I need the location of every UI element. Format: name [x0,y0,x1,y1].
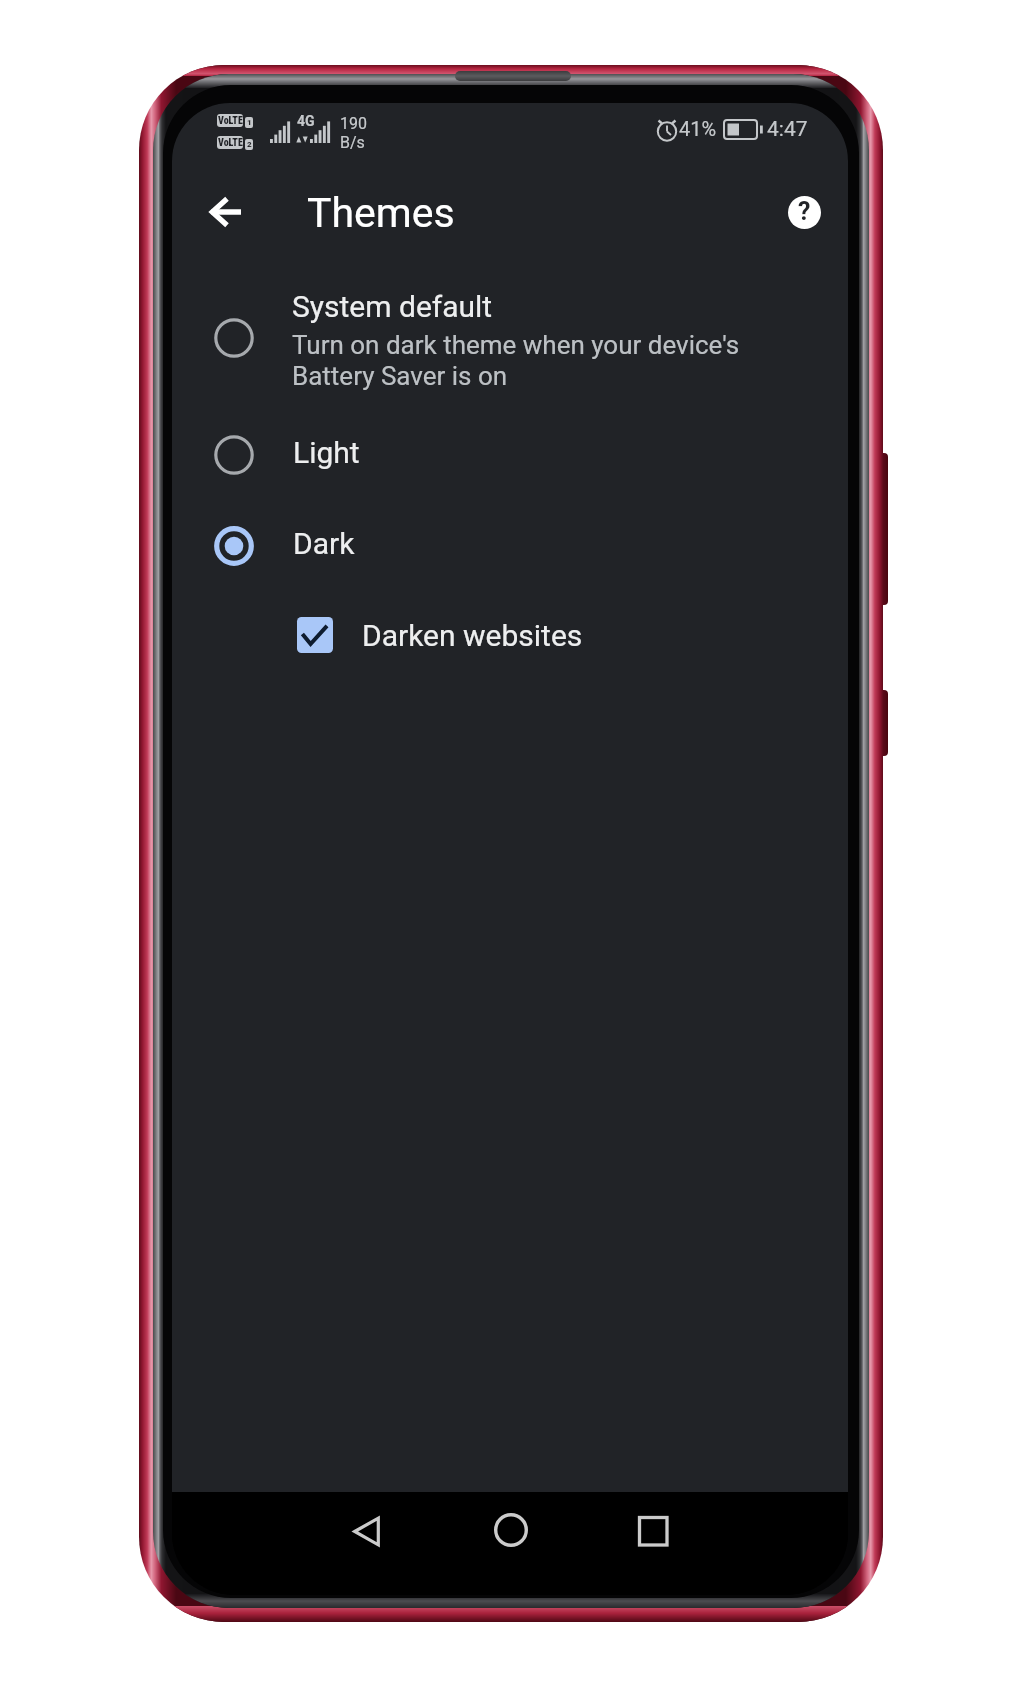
button[interactable]: Navigate up [196,183,256,243]
staticText: Themes [307,188,455,237]
button[interactable]: System default [192,275,828,393]
button[interactable]: Dark [192,500,828,590]
staticText: ? [798,197,811,226]
staticText: 41% [679,117,717,140]
staticText: VoLTE [218,137,243,149]
button[interactable]: Darken websites [277,593,797,679]
staticText: 4:47 [767,117,808,142]
staticText: B/s [340,133,365,152]
button[interactable]: Home [481,1500,541,1560]
staticText: 2 [247,140,252,149]
staticText: System default [292,292,493,324]
staticText: Turn on dark theme when your device's Ba… [292,329,740,391]
button[interactable]: Back [336,1500,396,1560]
staticText: Darken websites [362,621,583,653]
staticText: Dark [293,529,355,561]
button[interactable]: Recent apps [623,1500,683,1560]
staticText: 1 [247,118,252,127]
staticText: 190 [340,114,367,133]
button[interactable]: Light [192,409,828,499]
staticText: VoLTE [218,115,243,127]
staticText: Light [293,438,360,470]
button[interactable]: Help [774,182,834,242]
staticText: 4G [297,113,315,129]
